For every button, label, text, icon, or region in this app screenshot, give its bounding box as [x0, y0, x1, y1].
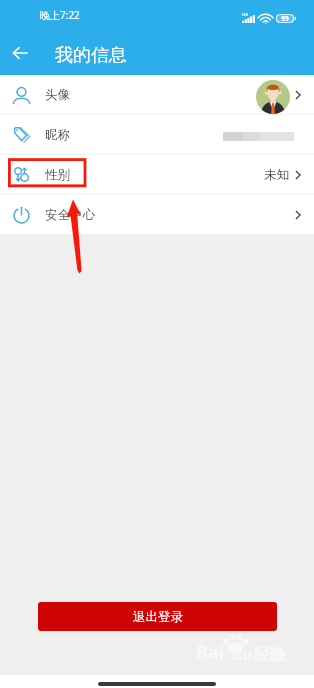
button[interactable]: 退出登录	[38, 602, 277, 631]
staticText: 性别	[45, 167, 70, 183]
staticText: 晚上7:22	[40, 8, 80, 22]
staticText: 未知	[264, 167, 289, 183]
button[interactable]: 昵称	[0, 115, 314, 154]
button[interactable]: 安全中心	[0, 195, 314, 234]
staticText: 昵称	[45, 127, 70, 143]
staticText: 99	[281, 14, 289, 23]
staticText: du	[232, 643, 253, 665]
staticText: 安全中心	[45, 207, 95, 223]
staticText: 我的信息	[55, 44, 127, 67]
button[interactable]: 头像	[0, 75, 314, 114]
staticText: Bai	[196, 640, 225, 665]
staticText: 经验	[254, 645, 286, 665]
staticText: 头像	[45, 87, 70, 103]
staticText: 退出登录	[133, 609, 183, 625]
button[interactable]: 性别	[0, 155, 314, 194]
button[interactable]: Back	[0, 33, 40, 73]
